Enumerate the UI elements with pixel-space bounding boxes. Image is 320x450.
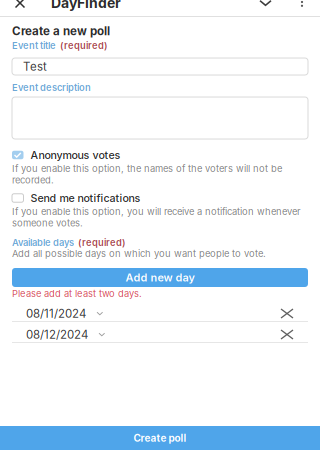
staticText: Please add at least two days. <box>12 288 142 299</box>
staticText: If you enable this option, you will rece… <box>12 206 301 229</box>
staticText: 08/12/2024 <box>26 328 88 341</box>
button[interactable]: Anonymous votes <box>12 149 308 161</box>
staticText: 08/11/2024 <box>26 307 86 320</box>
button[interactable]: Expand <box>260 0 271 8</box>
staticText: Anonymous votes <box>30 148 120 161</box>
button[interactable]: 08/12/2024 <box>12 327 274 342</box>
staticText: Test <box>23 60 47 73</box>
button[interactable]: Remove 08/11/2024 <box>274 306 300 321</box>
staticText: Send me notifications <box>30 191 140 204</box>
staticText: Event title <box>12 40 56 51</box>
staticText: If you enable this option, the names of … <box>12 163 282 186</box>
button[interactable]: Close <box>14 0 26 9</box>
button[interactable]: 08/11/2024 <box>12 306 274 321</box>
button[interactable]: Remove 08/12/2024 <box>274 327 300 342</box>
staticText: Event description <box>12 82 91 93</box>
staticText: DayFinder <box>51 0 121 11</box>
staticText: Add all possible days on which you want … <box>12 248 266 259</box>
button[interactable]: Send me notifications <box>12 192 308 204</box>
staticText: Add new day <box>125 271 194 284</box>
staticText: Create poll <box>133 432 186 444</box>
button[interactable]: Add new day <box>12 268 308 287</box>
staticText: Create a new poll <box>12 24 110 38</box>
button[interactable]: Create poll <box>0 426 320 450</box>
staticText: Available days <box>12 237 74 248</box>
button[interactable]: More options <box>296 0 308 8</box>
staticText: (required) <box>78 237 125 248</box>
staticText: (required) <box>60 40 107 51</box>
